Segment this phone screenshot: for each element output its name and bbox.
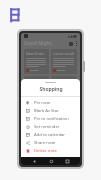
button[interactable]: Mark As Star	[21, 107, 80, 115]
staticText: Latest result	[53, 51, 75, 56]
staticText: Mark As Star	[34, 108, 59, 114]
staticText: Share note	[34, 140, 56, 146]
button[interactable]: Add to calendar	[21, 131, 80, 139]
button[interactable]: Back	[30, 157, 38, 165]
staticText: Shopping	[39, 86, 63, 93]
button[interactable]: Latest result	[51, 49, 77, 74]
staticText: New Order	[26, 51, 45, 56]
staticText: Set reminder	[34, 124, 60, 130]
staticText: Pin note	[34, 100, 51, 106]
button[interactable]: Home	[47, 157, 55, 165]
button[interactable]: Set reminder	[21, 123, 80, 131]
staticText: Delete note	[34, 148, 57, 154]
button[interactable]: Share note	[21, 139, 80, 147]
button[interactable]: Recents	[63, 157, 71, 165]
button[interactable]: More options	[76, 41, 77, 46]
button[interactable]: New Order	[24, 49, 49, 74]
button[interactable]: Pin to notification	[21, 115, 80, 123]
button[interactable]: Search	[69, 42, 73, 46]
staticText: Pin to notification	[34, 116, 69, 122]
button[interactable]: Pin note	[21, 99, 80, 107]
staticText: Add to calendar	[34, 132, 66, 138]
button[interactable]: Delete note	[21, 147, 80, 155]
staticText: Good Night,	[24, 40, 53, 47]
